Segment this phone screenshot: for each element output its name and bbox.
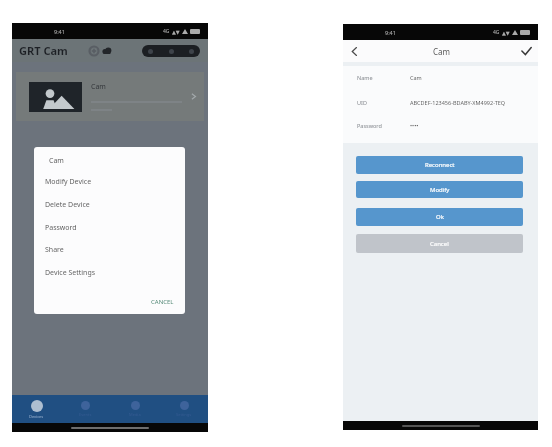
staticText: Cancel [430, 240, 449, 248]
staticText: Media [129, 412, 141, 417]
staticText: Share [45, 245, 64, 255]
staticText: 9:41 [385, 29, 396, 36]
staticText: Password [357, 122, 410, 129]
staticText: Cam [49, 156, 64, 166]
staticText: CANCEL [151, 298, 174, 306]
button[interactable]: CANCEL [147, 295, 178, 309]
staticText: Cam [433, 46, 451, 57]
staticText: Reconnect [425, 161, 455, 169]
button[interactable]: More [187, 47, 196, 56]
button[interactable]: Settings [159, 395, 208, 423]
button[interactable]: Back [346, 43, 362, 59]
staticText: Settings [176, 412, 192, 417]
staticText: ▲▼ [172, 29, 180, 35]
staticText: Events [79, 412, 92, 417]
button[interactable]: Search [146, 47, 155, 56]
button[interactable]: Add device [88, 45, 99, 56]
button[interactable]: Devices [12, 395, 61, 423]
button[interactable]: Save [518, 43, 534, 59]
button[interactable]: Sort [167, 47, 176, 56]
button[interactable]: Modify [356, 181, 523, 198]
staticText: •••• [410, 122, 419, 129]
staticText: Cam [91, 82, 106, 92]
staticText: ▲▼ [502, 30, 510, 36]
staticText: Device Settings [45, 268, 96, 278]
button[interactable]: Cloud storage [101, 45, 112, 56]
staticText: Password [45, 223, 77, 233]
button[interactable]: Cam [16, 72, 204, 121]
button[interactable]: Events [61, 395, 110, 423]
button[interactable]: Modify Device [34, 171, 185, 193]
staticText: Name [357, 74, 410, 81]
button[interactable]: Ok [356, 208, 523, 226]
staticText: Ok [436, 213, 444, 221]
staticText: Modify [430, 186, 450, 194]
staticText: Modify Device [45, 177, 92, 187]
button[interactable]: Password [34, 217, 185, 239]
staticText: 4G [493, 29, 500, 36]
staticText: ABCDEF-123456-BDABY-XM4992-TEQ [410, 99, 506, 106]
staticText: Cam [410, 74, 422, 81]
button[interactable]: Cancel [356, 234, 523, 253]
button[interactable]: Share [34, 239, 185, 261]
button[interactable]: Device Settings [34, 262, 185, 284]
staticText: Delete Device [45, 200, 90, 210]
staticText: 4G [163, 28, 170, 35]
staticText: UID [357, 99, 410, 106]
staticText: 9:41 [54, 28, 65, 35]
button[interactable]: Reconnect [356, 156, 523, 174]
button[interactable]: Media [110, 395, 159, 423]
staticText: Devices [29, 414, 44, 419]
staticText: GRT Cam [19, 43, 68, 58]
button[interactable]: Delete Device [34, 194, 185, 216]
